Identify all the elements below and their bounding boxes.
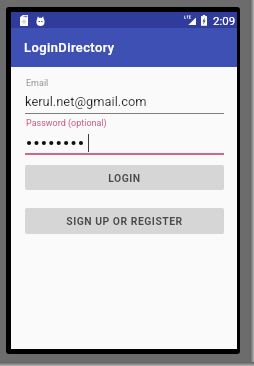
staticText: 2:09 — [213, 14, 236, 27]
staticText: LoginDirectory — [24, 40, 115, 55]
button[interactable]: LoginDirectory — [11, 28, 237, 67]
staticText: LOGIN — [108, 172, 141, 184]
staticText: kerul.net@gmail.com — [25, 94, 147, 109]
staticText: Password (optional) — [26, 118, 107, 129]
button[interactable]: SIGN UP OR REGISTER — [25, 208, 224, 234]
staticText: SIGN UP OR REGISTER — [66, 215, 183, 227]
staticText: Email — [26, 78, 49, 89]
button[interactable]: LOGIN — [25, 165, 224, 190]
